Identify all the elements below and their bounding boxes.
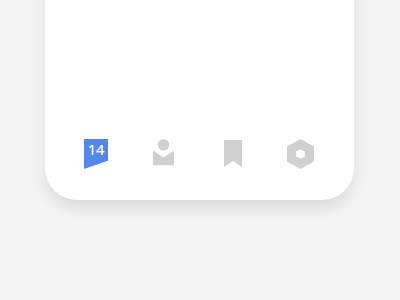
button[interactable]: Contacts: [129, 129, 197, 179]
staticText: 14: [88, 139, 105, 159]
button[interactable]: Bookmarks: [197, 129, 265, 179]
button[interactable]: Calendar, day 14: [61, 129, 129, 179]
button[interactable]: Settings: [265, 129, 333, 179]
